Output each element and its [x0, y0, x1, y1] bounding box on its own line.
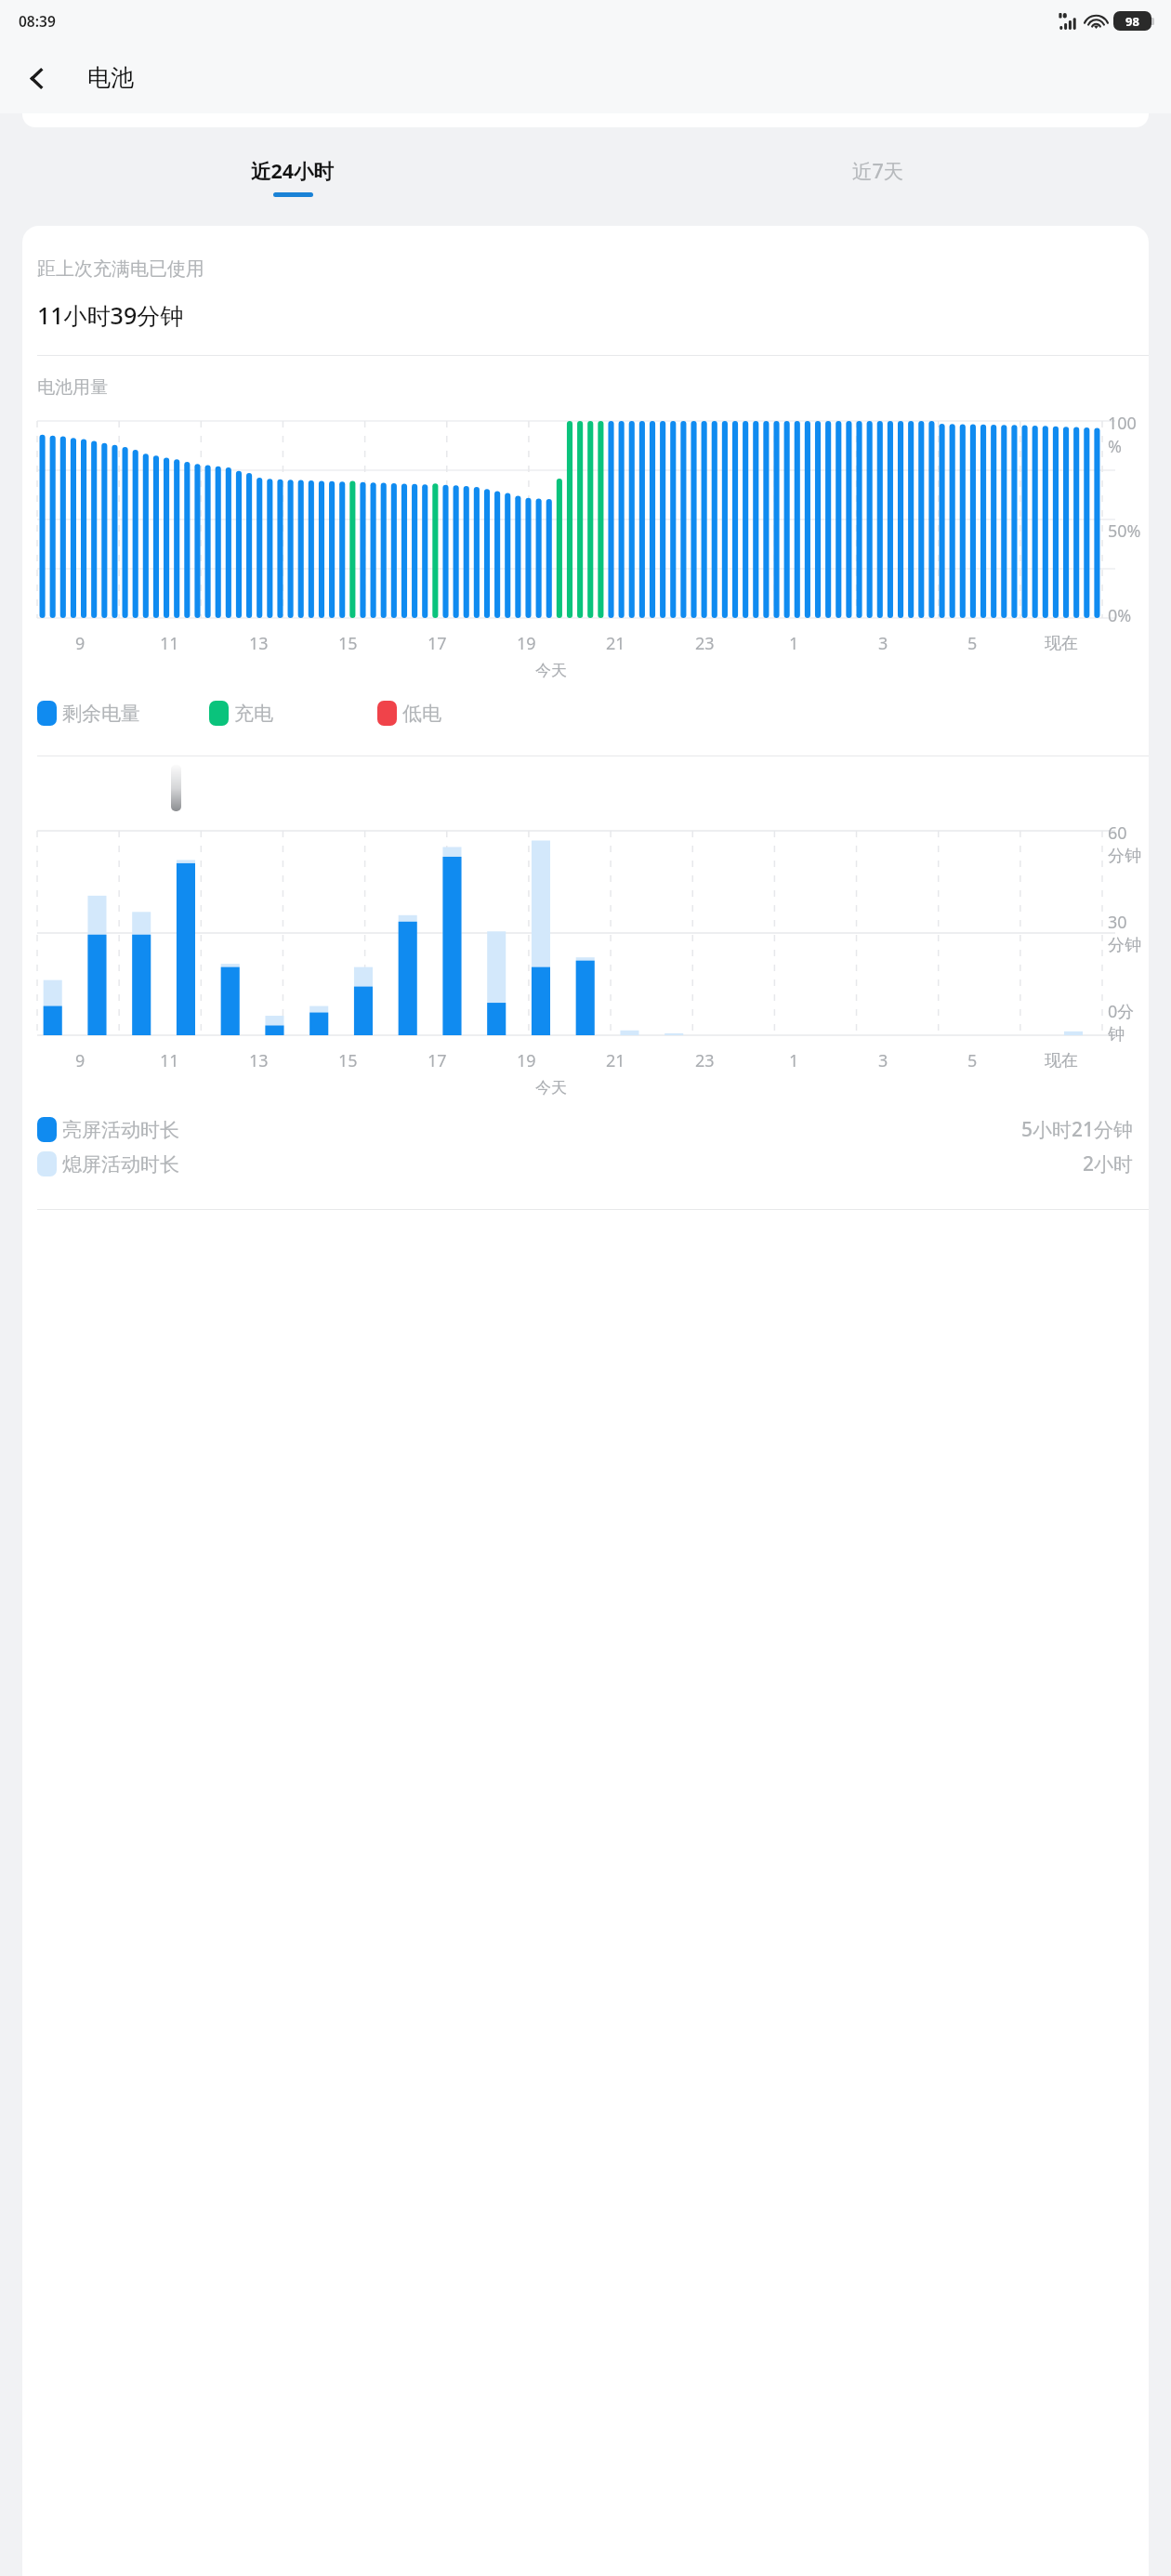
staticText: 60分钟 [1108, 821, 1141, 866]
staticText: 5 [967, 632, 978, 655]
staticText: 17 [428, 632, 447, 655]
staticText: 19 [517, 632, 536, 655]
staticText: 9 [75, 632, 86, 655]
staticText: 13 [249, 1049, 269, 1072]
staticText: 5小时21分钟 [1021, 1116, 1134, 1143]
staticText: 3 [878, 632, 888, 655]
staticText: 11 [160, 632, 179, 655]
staticText: 熄屏活动时长 [62, 1152, 179, 1176]
staticText: 23 [695, 632, 715, 655]
staticText: 11 [160, 1049, 179, 1072]
staticText: 现在 [1045, 1050, 1078, 1071]
staticText: 0分钟 [1108, 1000, 1141, 1045]
staticText: 1 [789, 632, 799, 655]
staticText: 100% [1108, 412, 1141, 458]
button[interactable]: 近24小时 [0, 127, 585, 226]
staticText: 08:39 [19, 11, 56, 31]
staticText: 17 [428, 1049, 447, 1072]
staticText: 1 [789, 1049, 799, 1072]
staticText: 电池 [87, 63, 134, 92]
staticText: 3 [878, 1049, 888, 1072]
staticText: 剩余电量 [62, 702, 140, 726]
staticText: 充电 [234, 702, 273, 726]
staticText: 9 [75, 1049, 86, 1072]
staticText: 0% [1108, 604, 1132, 627]
staticText: 21 [606, 632, 625, 655]
staticText: 近7天 [852, 157, 904, 184]
staticText: 今天 [22, 1078, 1080, 1097]
staticText: 11小时39分钟 [37, 299, 184, 331]
staticText: 13 [249, 632, 269, 655]
button[interactable]: Back [9, 51, 63, 105]
button[interactable]: 近7天 [585, 127, 1171, 226]
staticText: 今天 [22, 661, 1080, 680]
staticText: 23 [695, 1049, 715, 1072]
staticText: 19 [517, 1049, 536, 1072]
staticText: 亮屏活动时长 [62, 1118, 179, 1142]
staticText: 现在 [1045, 633, 1078, 654]
staticText: 98 [1125, 13, 1139, 30]
staticText: 电池用量 [37, 376, 108, 399]
staticText: 21 [606, 1049, 625, 1072]
staticText: 近24小时 [251, 157, 335, 184]
staticText: 15 [338, 1049, 358, 1072]
staticText: 15 [338, 632, 358, 655]
staticText: 50% [1108, 519, 1141, 543]
staticText: 30分钟 [1108, 911, 1141, 955]
staticText: 5 [967, 1049, 978, 1072]
staticText: 2小时 [1083, 1150, 1134, 1177]
staticText: 低电 [402, 702, 441, 726]
staticText: 距上次充满电已使用 [37, 257, 204, 281]
